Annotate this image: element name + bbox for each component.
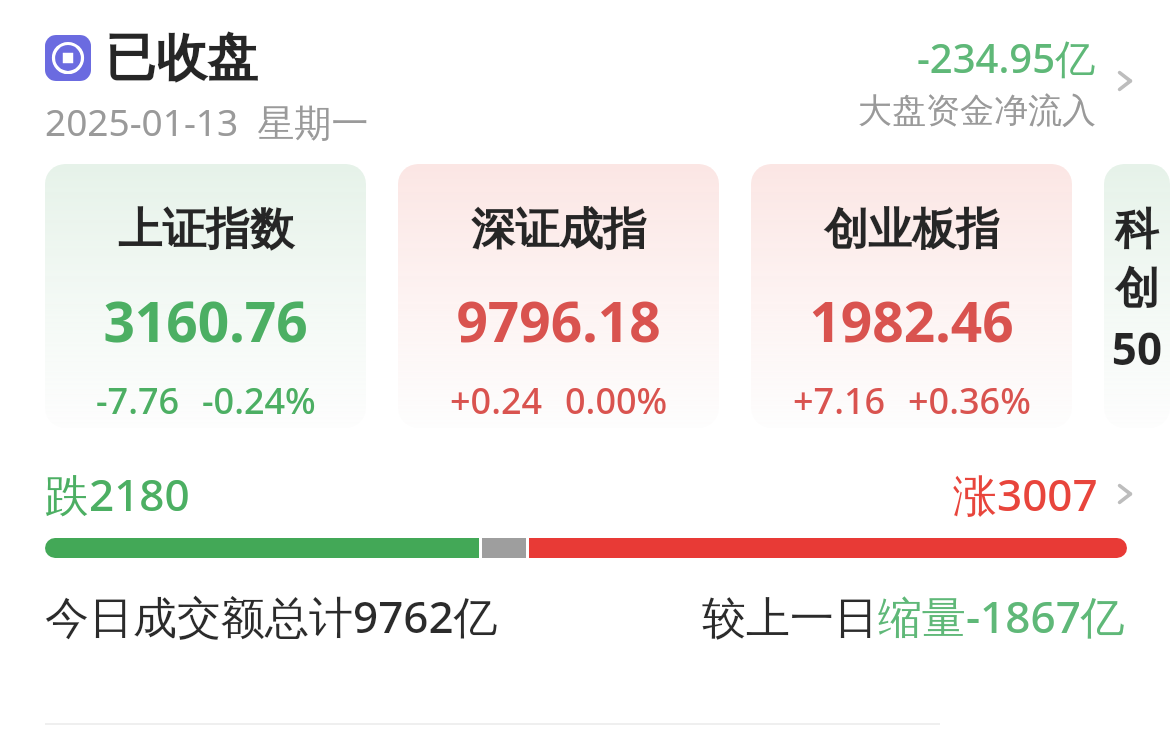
staticText: 2025-01-13 星期一	[45, 96, 369, 147]
staticText: 涨3007	[953, 464, 1098, 524]
staticText: 3160.76	[103, 283, 308, 358]
staticText: 1982.46	[809, 283, 1014, 358]
staticText: +7.16	[793, 376, 886, 425]
button[interactable]: 跌2180	[0, 464, 1170, 558]
staticText: -0.24%	[202, 376, 316, 425]
button[interactable]: 创业板指	[751, 164, 1072, 428]
staticText: 大盘资金净流入	[858, 89, 1096, 132]
staticText: 深证成指	[471, 202, 647, 257]
staticText: 今日成交额总计9762亿	[45, 586, 498, 646]
staticText: +0.36%	[908, 376, 1031, 425]
button[interactable]: 上证指数	[45, 164, 366, 428]
staticText: 跌2180	[45, 464, 190, 524]
other: Market closed	[45, 35, 91, 81]
staticText: 科创50	[1104, 202, 1170, 378]
staticText: 0.00%	[565, 376, 668, 425]
button[interactable]: 科创50	[1104, 164, 1170, 428]
staticText: 创业板指	[824, 202, 1000, 257]
button[interactable]: -234.95亿	[858, 30, 1140, 132]
staticText: 9796.18	[456, 283, 661, 358]
staticText: 较上一日缩量-1867亿	[702, 586, 1125, 646]
staticText: 上证指数	[118, 202, 294, 257]
button[interactable]: 深证成指	[398, 164, 719, 428]
staticText: 已收盘	[105, 26, 258, 90]
staticText: +0.24	[450, 376, 543, 425]
staticText: -7.76	[96, 376, 180, 425]
staticText: -234.95亿	[917, 30, 1096, 85]
